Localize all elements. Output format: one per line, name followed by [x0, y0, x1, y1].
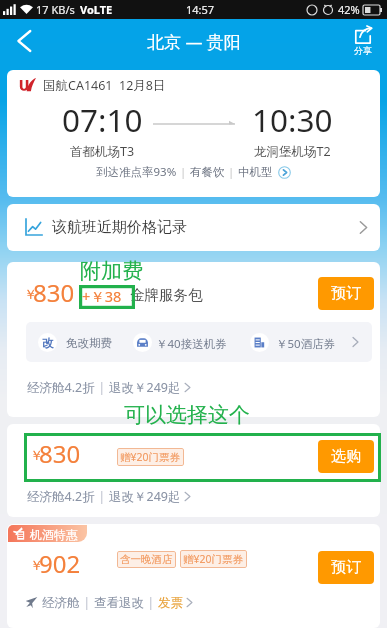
staticText: ￥40接送机券 — [156, 336, 227, 352]
staticText: | — [144, 594, 158, 611]
button[interactable]: 选购 — [318, 440, 374, 473]
staticText: 国航CA1461 12月8日 — [43, 77, 166, 94]
staticText: 退改￥249起 — [109, 488, 181, 505]
staticText: 有餐饮 — [190, 165, 225, 179]
button[interactable]: 分享 — [339, 19, 387, 63]
staticText: 发票 — [158, 595, 183, 611]
staticText: 10:30 — [252, 98, 333, 141]
button[interactable]: 经济舱4.2折 — [27, 379, 191, 396]
staticText: 龙洞堡机场T2 — [254, 143, 331, 160]
staticText: 42% — [338, 2, 360, 17]
staticText: 830 — [39, 437, 81, 470]
staticText: 经济舱 — [42, 595, 80, 611]
staticText: ￥50酒店券 — [276, 336, 336, 352]
button[interactable]: 该航班近期价格记录 — [7, 204, 380, 251]
staticText: 含一晚酒店 — [120, 553, 173, 566]
staticText: ￥ — [30, 557, 43, 573]
staticText: 机酒特惠 — [30, 527, 78, 542]
staticText: 退改￥249起 — [109, 379, 181, 396]
staticText: 北京 — 贵阳 — [147, 30, 241, 53]
staticText: 分享 — [354, 45, 372, 56]
staticText: VoLTE — [80, 2, 113, 17]
staticText: 07:10 — [62, 98, 143, 141]
staticText: 预订 — [331, 558, 361, 577]
staticText: 14:57 — [186, 2, 215, 17]
staticText: 免改期费 — [66, 336, 112, 350]
staticText: 查看退改 — [94, 595, 144, 611]
staticText: 可以选择这个 — [124, 402, 250, 428]
staticText: 改 — [42, 336, 54, 350]
staticText: 预订 — [331, 284, 361, 303]
staticText: 首都机场T3 — [70, 143, 135, 160]
button[interactable]: 改 — [26, 322, 372, 362]
staticText: 中机型 — [238, 165, 273, 179]
staticText: 该航班近期价格记录 — [52, 218, 187, 237]
staticText: | — [95, 488, 109, 505]
button[interactable]: 预订 — [318, 277, 374, 310]
button[interactable]: 预订 — [318, 551, 374, 584]
button[interactable]: 经济舱 — [25, 594, 193, 611]
button[interactable]: Back — [0, 19, 48, 63]
staticText: | — [225, 164, 238, 180]
staticText: 830 — [33, 276, 75, 309]
staticText: 金牌服务包 — [130, 286, 203, 304]
staticText: | — [80, 594, 94, 611]
staticText: ￥ — [24, 286, 37, 302]
staticText: 902 — [39, 547, 81, 580]
staticText: ￥ — [30, 447, 43, 463]
staticText: 选购 — [331, 447, 361, 466]
staticText: 附加费 — [80, 258, 143, 284]
button[interactable]: 经济舱4.2折 — [27, 488, 191, 505]
staticText: | — [177, 164, 190, 180]
staticText: 经济舱4.2折 — [27, 488, 95, 505]
staticText: +￥38 — [82, 286, 122, 306]
staticText: 17 KB/s — [36, 2, 75, 17]
staticText: | — [95, 379, 109, 396]
staticText: 赠¥20门票券 — [120, 450, 181, 464]
staticText: 到达准点率93% — [96, 164, 177, 180]
staticText: 赠¥20门票券 — [183, 552, 244, 566]
staticText: 经济舱4.2折 — [27, 379, 95, 396]
